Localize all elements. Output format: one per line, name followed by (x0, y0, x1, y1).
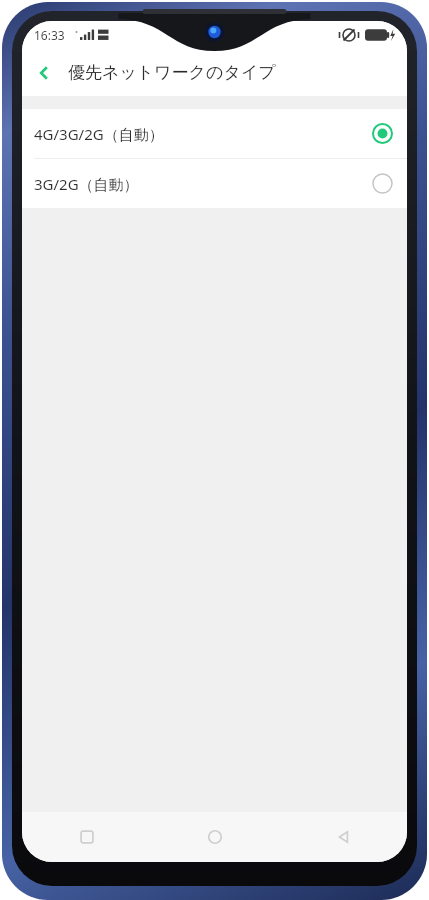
button[interactable]: ホーム (151, 812, 279, 862)
button[interactable]: 戻る (279, 812, 407, 862)
staticText: 16:33 (34, 27, 65, 43)
button[interactable]: 3G/2G（自動） (22, 159, 407, 208)
staticText: 優先ネットワークのタイプ (68, 62, 276, 83)
button[interactable]: 4G/3G/2G（自動） (22, 109, 407, 158)
button[interactable]: 戻る (22, 49, 66, 96)
staticText: 3G/2G（自動） (34, 174, 372, 194)
staticText: 4G/3G/2G（自動） (34, 124, 372, 144)
button[interactable]: 最近のアプリ (22, 812, 151, 862)
